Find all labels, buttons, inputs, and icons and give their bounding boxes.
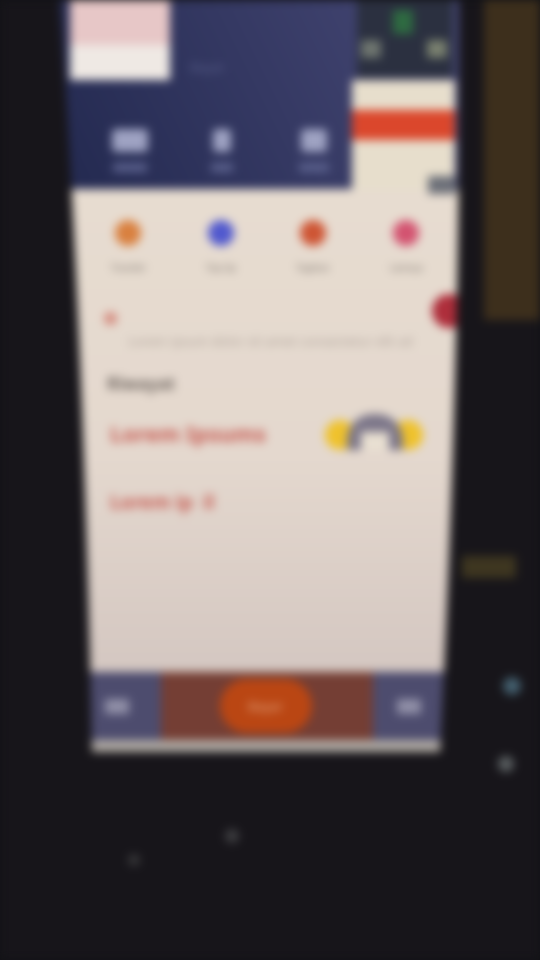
staticText: Bayar xyxy=(248,697,284,715)
staticText: Riwayat xyxy=(107,372,176,395)
button[interactable]: Bayar xyxy=(220,679,312,733)
button[interactable]: Home xyxy=(60,672,161,740)
staticText: Top Up xyxy=(206,261,236,273)
button[interactable]: Transfer xyxy=(84,220,172,273)
button[interactable]: Lainnya xyxy=(362,220,450,273)
button[interactable]: Scan xyxy=(98,129,162,172)
other: Pay xyxy=(213,129,231,152)
staticText: Transfer xyxy=(111,261,146,273)
other: Scan xyxy=(112,129,148,152)
staticText: Lorem ip il xyxy=(110,489,215,515)
button[interactable]: Tagihan xyxy=(269,220,357,273)
button[interactable]: Profile xyxy=(373,672,460,740)
button[interactable]: Pay xyxy=(190,129,254,172)
staticText: Lorem Ipsums xyxy=(110,418,267,448)
other: Card xyxy=(301,129,327,152)
staticText: Lainnya xyxy=(390,261,423,273)
button[interactable]: Card xyxy=(282,129,346,172)
staticText: Tagihan xyxy=(296,261,330,273)
button[interactable]: Top Up xyxy=(177,220,265,273)
